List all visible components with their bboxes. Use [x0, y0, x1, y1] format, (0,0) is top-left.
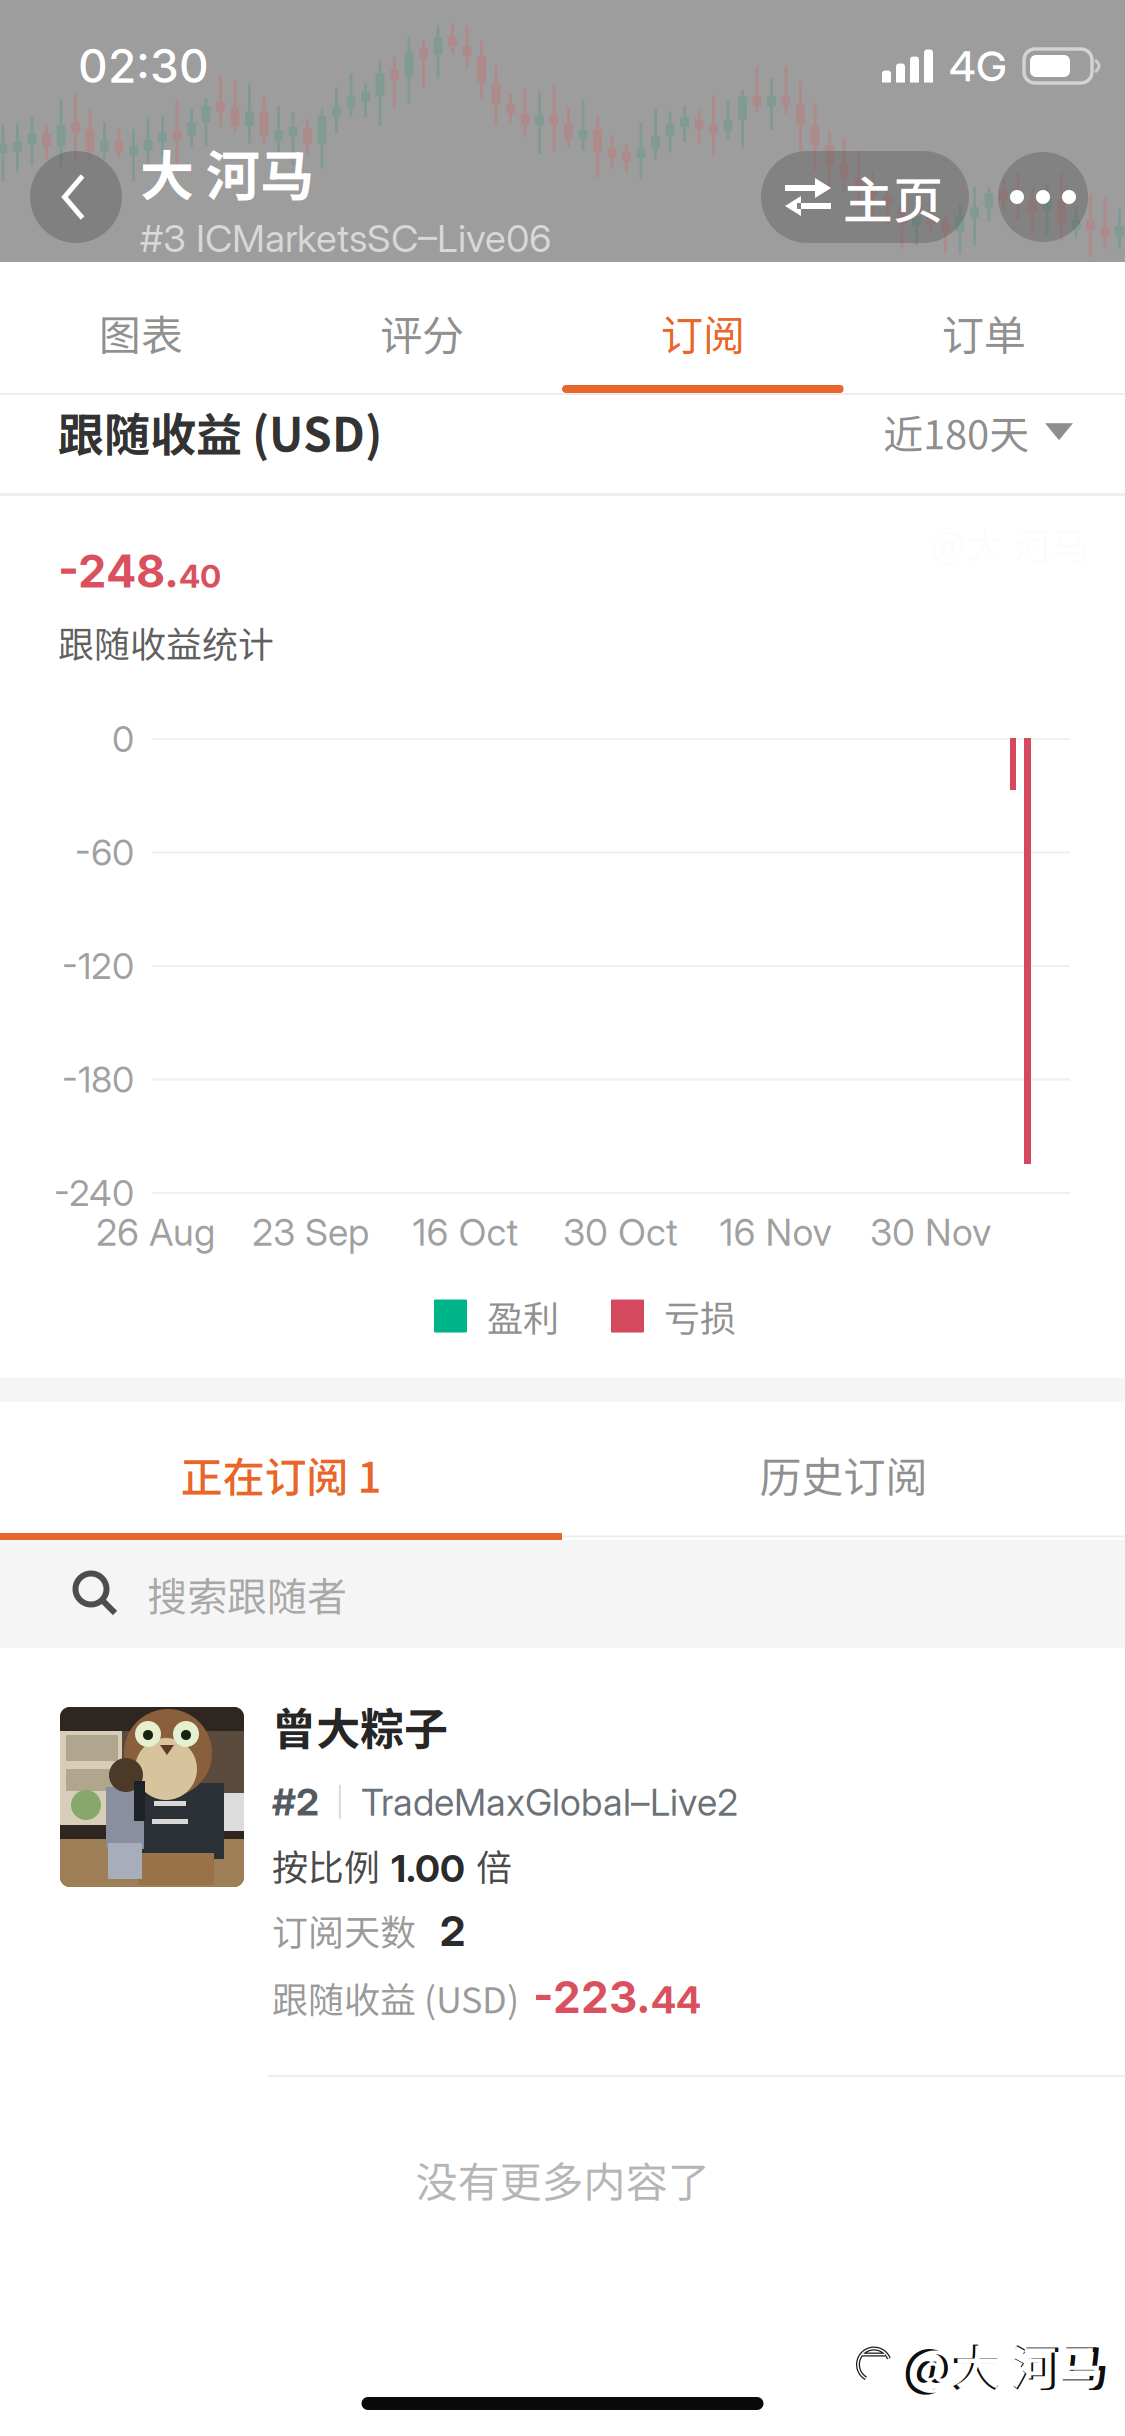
button[interactable]: Back: [30, 151, 122, 243]
staticText: 图表: [99, 302, 183, 363]
staticText: 订阅: [661, 302, 745, 363]
staticText: 正在订阅 1: [180, 1444, 381, 1505]
staticText: 亏损: [664, 1290, 736, 1342]
button[interactable]: 正在订阅 1: [0, 1409, 562, 1540]
staticText: 1.00: [391, 1845, 465, 1891]
staticText: 曾大粽子: [272, 1694, 448, 1758]
button[interactable]: 评分: [281, 262, 562, 393]
staticText: 订单: [942, 302, 1026, 363]
staticText: -223.: [533, 1970, 651, 2024]
staticText: 近180天: [883, 403, 1029, 461]
button[interactable]: 订阅: [562, 262, 843, 393]
button[interactable]: More options: [998, 152, 1088, 242]
button[interactable]: 近180天: [883, 403, 1073, 461]
staticText: 倍: [476, 1839, 512, 1891]
staticText: 23 Sep: [252, 1210, 369, 1255]
staticText: 4G: [949, 41, 1007, 91]
staticText: 0: [112, 717, 134, 761]
button[interactable]: 曾大粽子: [0, 1648, 1125, 2077]
staticText: 30 Nov: [870, 1210, 991, 1255]
staticText: 大 河马: [140, 133, 314, 211]
staticText: 2: [440, 1905, 465, 1956]
staticText: 跟随收益 (USD): [272, 1971, 519, 2024]
staticText: #2: [272, 1779, 319, 1825]
staticText: -60: [75, 830, 134, 874]
staticText: 主页: [843, 161, 943, 233]
staticText: 盈利: [487, 1290, 559, 1342]
staticText: 26 Aug: [96, 1210, 215, 1255]
staticText: 02:30: [78, 38, 209, 94]
button[interactable]: 图表: [0, 262, 281, 393]
staticText: -240: [54, 1171, 134, 1215]
button[interactable]: 订单: [843, 262, 1124, 393]
staticText: -180: [62, 1057, 134, 1101]
staticText: 16 Nov: [719, 1210, 831, 1255]
staticText: 跟随收益统计: [58, 616, 274, 668]
staticText: 跟随收益 (USD): [58, 398, 382, 465]
button[interactable]: 历史订阅: [562, 1409, 1125, 1540]
staticText: 30 Oct: [563, 1210, 678, 1255]
staticText: TradeMaxGlobal–Live2: [361, 1780, 738, 1825]
staticText: 按比例: [272, 1839, 380, 1891]
staticText: 评分: [380, 302, 464, 363]
staticText: 订阅天数: [272, 1904, 416, 1956]
staticText: @大 河马: [909, 2331, 1102, 2398]
button[interactable]: 搜索跟随者: [0, 1540, 1125, 1648]
staticText: ｜: [323, 1775, 357, 1825]
staticText: 16 Oct: [412, 1210, 518, 1255]
button[interactable]: 主页: [761, 151, 969, 243]
staticText: -248.: [58, 544, 179, 598]
staticText: -120: [62, 944, 134, 988]
staticText: 历史订阅: [759, 1444, 927, 1505]
staticText: #3 ICMarketsSC–Live06: [140, 215, 551, 261]
staticText: 44: [651, 1977, 701, 2023]
staticText: 40: [179, 557, 221, 595]
staticText: 没有更多内容了: [415, 2149, 709, 2210]
staticText: 搜索跟随者: [147, 1565, 347, 1623]
staticText: @大 河马: [903, 2329, 1109, 2400]
